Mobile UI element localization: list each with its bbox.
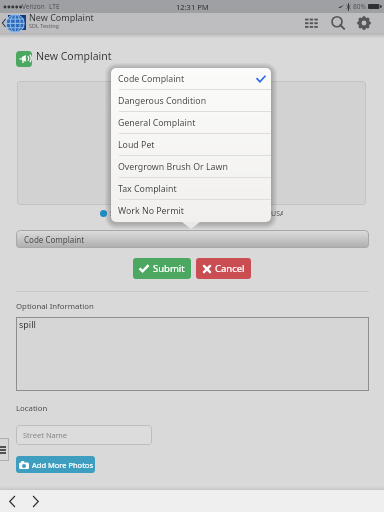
staticText: SDL Testing: [29, 22, 59, 29]
button[interactable]: Add More Photos: [16, 456, 95, 473]
button[interactable]: Cancel: [196, 258, 251, 279]
button[interactable]: Search: [329, 15, 347, 31]
button[interactable]: Code Complaint: [16, 230, 369, 248]
staticText: Cancel: [215, 262, 245, 275]
staticText: Work No Permit: [118, 205, 184, 217]
staticText: 5959 Mason Montgomery Rd, Mason, OH 4504…: [110, 209, 283, 219]
button[interactable]: Settings: [356, 15, 372, 31]
staticText: 80%: [353, 2, 366, 11]
button[interactable]: Dangerous Condition: [111, 90, 271, 112]
button[interactable]: Back: [4, 493, 21, 510]
button[interactable]: Back: [0, 13, 8, 33]
staticText: New Complaint: [29, 11, 94, 23]
button[interactable]: Menu: [0, 438, 9, 461]
staticText: Location: [16, 403, 48, 414]
button[interactable]: Loud Pet: [111, 134, 271, 156]
staticText: Tax Complaint: [118, 183, 177, 195]
button[interactable]: Forward: [27, 493, 44, 510]
staticText: Submit: [153, 262, 185, 275]
staticText: Verizon: [22, 2, 45, 11]
button[interactable]: Apps: [301, 16, 323, 30]
staticText: New Complaint: [36, 49, 112, 63]
button[interactable]: Tax Complaint: [111, 178, 271, 200]
staticText: Street Name: [23, 430, 68, 440]
button[interactable]: General Complaint: [111, 112, 271, 134]
staticText: General Complaint: [118, 117, 196, 129]
button[interactable]: Work No Permit: [111, 200, 271, 222]
button[interactable]: Overgrown Brush Or Lawn: [111, 156, 271, 178]
staticText: spill: [19, 318, 36, 330]
staticText: Code Complaint: [118, 73, 185, 85]
button[interactable]: Submit: [133, 258, 191, 279]
staticText: Loud Pet: [118, 139, 155, 151]
button[interactable]: Street Name: [16, 425, 152, 445]
staticText: 12:31 PM: [176, 2, 209, 12]
staticText: Add More Photos: [32, 460, 93, 470]
staticText: LTE: [49, 2, 60, 11]
staticText: Overgrown Brush Or Lawn: [118, 161, 228, 173]
staticText: Code Complaint: [24, 234, 85, 245]
button[interactable]: Code Complaint: [111, 68, 271, 90]
staticText: Dangerous Condition: [118, 95, 207, 107]
staticText: Optional Information: [16, 301, 94, 312]
